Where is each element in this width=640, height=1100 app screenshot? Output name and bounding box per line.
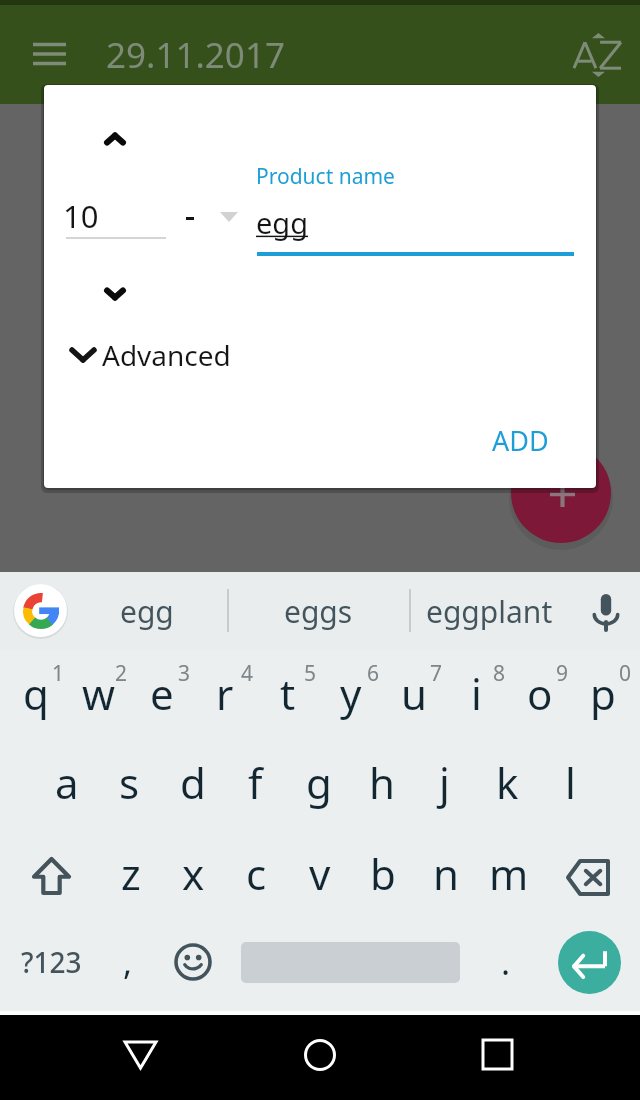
staticText: p xyxy=(590,665,616,722)
staticText: 0 xyxy=(619,659,632,688)
staticText: 6 xyxy=(367,659,380,688)
staticText: h xyxy=(369,754,395,811)
button[interactable]: p xyxy=(571,648,634,738)
button[interactable]: Emoji xyxy=(162,917,224,1007)
staticText: l xyxy=(565,754,576,811)
staticText: . xyxy=(501,939,511,985)
staticText: Advanced xyxy=(102,336,231,374)
button[interactable]: Google search xyxy=(14,584,67,637)
staticText: egg xyxy=(120,591,174,632)
button[interactable]: Shift xyxy=(6,831,96,921)
button[interactable]: Advanced xyxy=(66,327,231,383)
button[interactable]: u xyxy=(382,648,445,738)
staticText: a xyxy=(55,754,79,811)
staticText: j xyxy=(439,754,450,811)
button[interactable]: f xyxy=(224,737,287,827)
staticText: eggplant xyxy=(426,591,553,632)
button[interactable]: eggplant xyxy=(415,572,564,650)
button[interactable]: j xyxy=(413,737,476,827)
button[interactable]: q xyxy=(4,648,67,738)
staticText: eggs xyxy=(284,591,353,632)
button[interactable]: b xyxy=(351,828,414,918)
button[interactable]: Space xyxy=(231,917,470,1007)
button[interactable]: s xyxy=(98,737,161,827)
button[interactable]: z xyxy=(99,828,162,918)
staticText: 4 xyxy=(241,659,254,688)
button[interactable]: Decrease quantity xyxy=(82,262,148,326)
button[interactable]: c xyxy=(225,828,288,918)
staticText: q xyxy=(23,665,49,722)
button[interactable]: Recent apps xyxy=(454,1012,540,1097)
staticText: r xyxy=(216,665,234,722)
button[interactable]: g xyxy=(287,737,350,827)
button[interactable]: r xyxy=(193,648,256,738)
staticText: o xyxy=(527,665,553,722)
staticText: u xyxy=(401,665,427,722)
button[interactable]: ?123 xyxy=(6,917,96,1007)
staticText: y xyxy=(340,665,362,722)
button[interactable]: x xyxy=(162,828,225,918)
staticText: egg xyxy=(256,203,309,242)
button[interactable]: Add item xyxy=(511,443,611,543)
button[interactable]: w xyxy=(67,648,130,738)
button[interactable]: ADD xyxy=(478,410,562,470)
staticText: 9 xyxy=(556,659,569,688)
button[interactable]: Enter xyxy=(543,917,635,1007)
button[interactable]: k xyxy=(476,737,539,827)
button[interactable]: h xyxy=(350,737,413,827)
button[interactable]: a xyxy=(35,737,98,827)
staticText: v xyxy=(309,845,331,902)
button[interactable]: Menu xyxy=(16,21,82,87)
staticText: b xyxy=(370,845,396,902)
button[interactable]: o xyxy=(508,648,571,738)
button[interactable]: m xyxy=(477,828,540,918)
button[interactable]: t xyxy=(256,648,319,738)
staticText: s xyxy=(119,754,140,811)
staticText: e xyxy=(150,665,174,722)
staticText: m xyxy=(489,845,529,902)
button[interactable]: , xyxy=(97,917,159,1007)
button[interactable]: i xyxy=(445,648,508,738)
button[interactable]: n xyxy=(414,828,477,918)
staticText: d xyxy=(180,754,206,811)
staticText: f xyxy=(248,754,263,811)
button[interactable]: Increase quantity xyxy=(82,107,148,171)
button[interactable]: l xyxy=(539,737,602,827)
staticText: 2 xyxy=(115,659,128,688)
button[interactable]: egg xyxy=(72,572,221,650)
staticText: , xyxy=(123,939,133,985)
button[interactable]: . xyxy=(476,917,536,1007)
button[interactable]: Backspace xyxy=(543,832,633,922)
button[interactable]: e xyxy=(130,648,193,738)
staticText: t xyxy=(280,665,296,722)
staticText: i xyxy=(471,665,482,722)
button[interactable]: Choose unit xyxy=(220,212,238,222)
button[interactable]: Home xyxy=(277,1012,363,1097)
staticText: z xyxy=(121,845,141,902)
button[interactable]: y xyxy=(319,648,382,738)
staticText: c xyxy=(246,845,267,902)
staticText: 5 xyxy=(304,659,317,688)
staticText: Product name xyxy=(256,162,395,191)
button[interactable]: d xyxy=(161,737,224,827)
button[interactable]: eggs xyxy=(244,572,393,650)
button[interactable]: Voice input xyxy=(580,586,632,638)
button[interactable]: Back xyxy=(97,1012,183,1097)
staticText: 10 xyxy=(63,195,99,237)
button[interactable]: Sort A to Z xyxy=(564,22,630,88)
staticText: 3 xyxy=(178,659,191,688)
staticText: ADD xyxy=(492,422,549,459)
staticText: k xyxy=(496,754,519,811)
staticText: g xyxy=(306,754,332,811)
staticText: ?123 xyxy=(21,943,82,981)
staticText: x xyxy=(182,845,205,902)
staticText: 8 xyxy=(493,659,506,688)
staticText: n xyxy=(433,845,459,902)
staticText: 29.11.2017 xyxy=(106,31,285,79)
staticText: 1 xyxy=(52,659,65,688)
staticText: w xyxy=(82,665,116,722)
staticText: 7 xyxy=(430,659,443,688)
button[interactable]: v xyxy=(288,828,351,918)
